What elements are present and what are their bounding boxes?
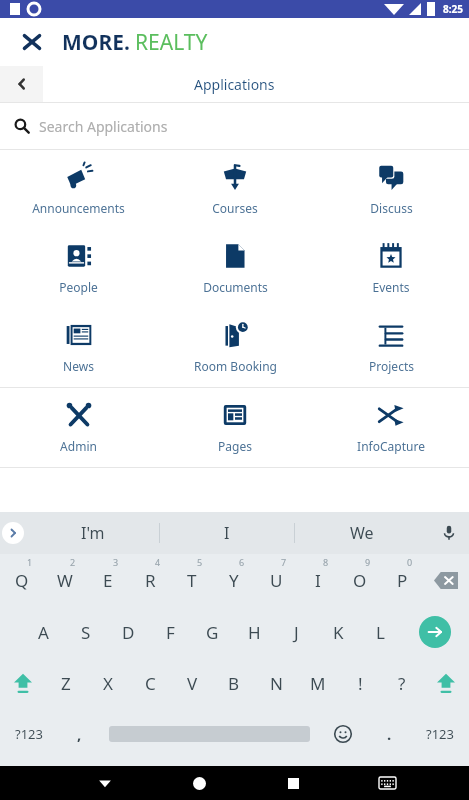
button[interactable]: Close [14, 24, 50, 60]
staticText: C [145, 672, 156, 695]
button[interactable]: I [160, 512, 294, 554]
staticText: Courses [212, 200, 258, 216]
button[interactable]: V [171, 658, 213, 708]
button[interactable]: R [129, 554, 171, 606]
staticText: Search Applications [39, 117, 168, 136]
button[interactable]: ?123 [0, 708, 58, 760]
staticText: H [248, 621, 261, 644]
button[interactable]: X [87, 658, 129, 708]
staticText: 1 [27, 556, 33, 568]
staticText: 8:25 [443, 2, 463, 16]
staticText: Announcements [32, 200, 125, 216]
staticText: Room Booking [194, 358, 277, 374]
staticText: Documents [203, 279, 268, 295]
staticText: D [122, 621, 135, 644]
button[interactable]: I'm [26, 512, 159, 554]
button[interactable]: Backspace [423, 554, 469, 606]
staticText: F [166, 621, 175, 644]
staticText: T [187, 569, 197, 592]
staticText: Q [15, 569, 29, 592]
button[interactable]: A [22, 606, 65, 658]
button[interactable]: G [191, 606, 233, 658]
button[interactable]: J [275, 606, 317, 658]
button[interactable]: Applications [43, 66, 469, 102]
button[interactable]: N [255, 658, 297, 708]
button[interactable]: Events [313, 229, 469, 308]
staticText: I [224, 522, 230, 544]
staticText: Discuss [370, 200, 413, 216]
button[interactable]: ? [381, 658, 423, 708]
button[interactable]: InfoCapture [313, 388, 469, 467]
button[interactable]: C [129, 658, 171, 708]
button[interactable]: Admin [0, 388, 157, 467]
button[interactable]: B [213, 658, 255, 708]
button[interactable]: Enter [401, 606, 469, 658]
button[interactable]: Expand suggestions [0, 512, 26, 554]
staticText: X [103, 672, 113, 695]
staticText: 4 [155, 556, 161, 568]
button[interactable]: W [43, 554, 86, 606]
staticText: Applications [194, 75, 275, 94]
button[interactable]: Keyboard [340, 766, 434, 800]
staticText: Events [372, 279, 410, 295]
staticText: REALTY [135, 28, 208, 57]
button[interactable]: E [86, 554, 129, 606]
staticText: 7 [281, 556, 287, 568]
button[interactable]: S [65, 606, 107, 658]
button[interactable]: Voice input [429, 512, 469, 554]
staticText: ? [398, 672, 406, 695]
button[interactable]: We [295, 512, 429, 554]
button[interactable]: Announcements [0, 150, 157, 229]
staticText: J [294, 621, 299, 644]
staticText: Projects [369, 358, 414, 374]
button[interactable]: Shift [0, 658, 45, 708]
button[interactable]: Q [0, 554, 43, 606]
staticText: 9 [365, 556, 371, 568]
button[interactable]: Emoji [318, 708, 368, 760]
button[interactable]: Y [213, 554, 255, 606]
button[interactable]: Back [0, 66, 43, 102]
button[interactable]: P [381, 554, 423, 606]
button[interactable]: , [58, 708, 100, 760]
button[interactable]: D [107, 606, 149, 658]
button[interactable]: T [171, 554, 213, 606]
button[interactable]: ?123 [410, 708, 469, 760]
button[interactable]: Space [100, 708, 318, 760]
button[interactable]: Back [58, 766, 152, 800]
button[interactable]: Z [45, 658, 87, 708]
button[interactable]: M [297, 658, 339, 708]
button[interactable]: Home [152, 766, 246, 800]
button[interactable]: Recents [246, 766, 340, 800]
button[interactable]: . [368, 708, 410, 760]
button[interactable]: K [317, 606, 359, 658]
button[interactable]: Projects [313, 308, 469, 387]
button[interactable]: News [0, 308, 157, 387]
staticText: U [270, 569, 283, 592]
staticText: N [270, 672, 283, 695]
button[interactable]: O [339, 554, 381, 606]
button[interactable]: Discuss [313, 150, 469, 229]
button[interactable]: Pages [157, 388, 313, 467]
button[interactable]: Documents [157, 229, 313, 308]
button[interactable]: Room Booking [157, 308, 313, 387]
button[interactable]: L [359, 606, 401, 658]
staticText: 5 [197, 556, 203, 568]
staticText: K [333, 621, 344, 644]
staticText: 3 [113, 556, 119, 568]
staticText: A [38, 621, 49, 644]
button[interactable]: F [149, 606, 191, 658]
button[interactable]: People [0, 229, 157, 308]
staticText: Pages [218, 438, 252, 454]
button[interactable]: ! [339, 658, 381, 708]
staticText: P [397, 569, 408, 592]
button[interactable]: U [255, 554, 297, 606]
staticText: ?123 [426, 725, 454, 743]
staticText: . [124, 28, 130, 57]
button[interactable]: H [233, 606, 275, 658]
staticText: W [57, 569, 73, 592]
button[interactable]: Courses [157, 150, 313, 229]
button[interactable]: Shift [423, 658, 469, 708]
button[interactable]: I [297, 554, 339, 606]
button[interactable]: Search Applications [0, 103, 469, 149]
staticText: News [63, 358, 94, 374]
